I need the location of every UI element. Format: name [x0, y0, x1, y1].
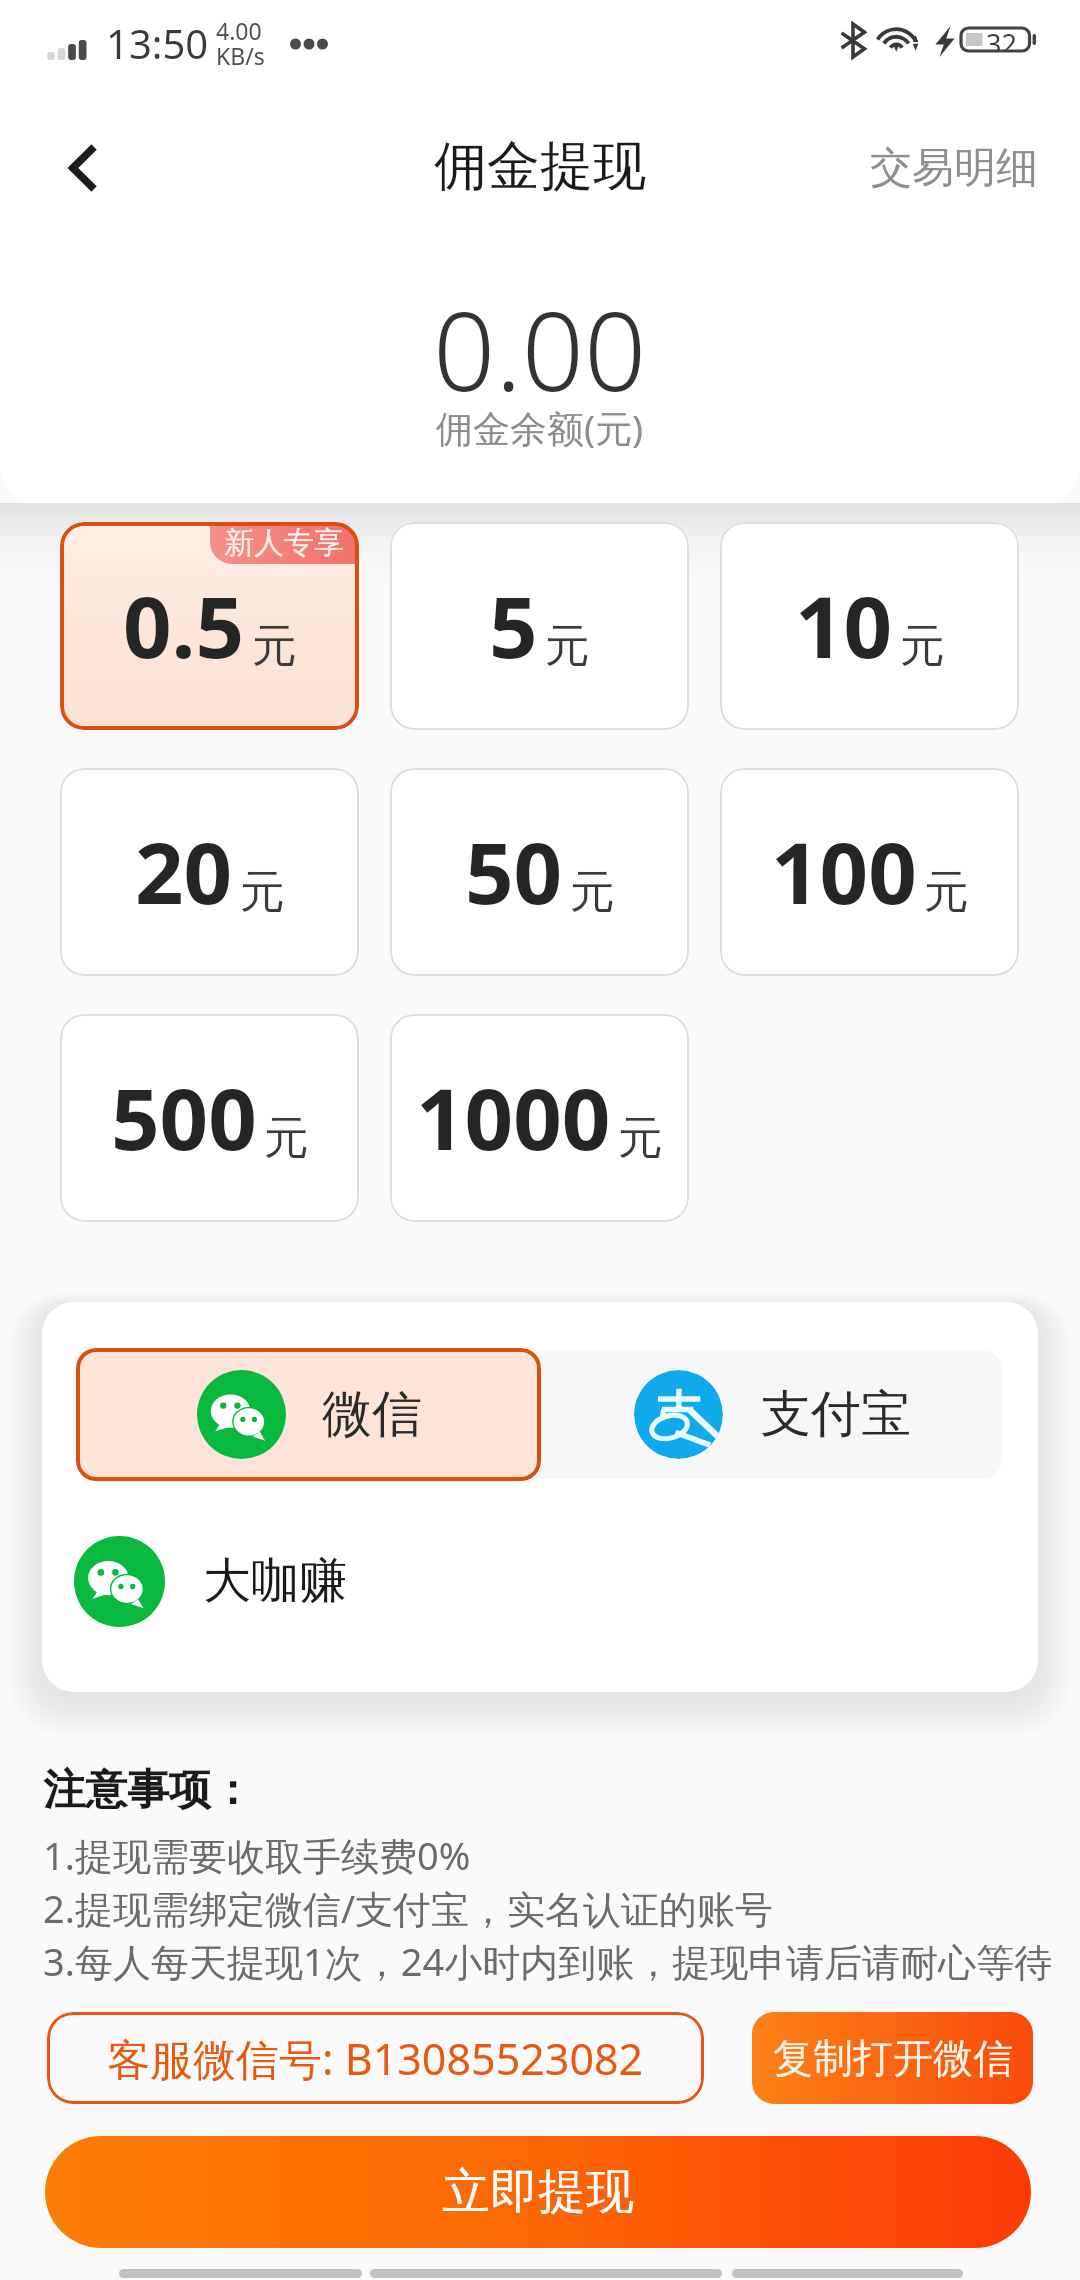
staticText: 13:50	[106, 16, 209, 70]
staticText: KB/s	[216, 40, 265, 71]
button[interactable]: 0.5	[60, 522, 359, 730]
staticText: 0.5	[123, 567, 245, 683]
staticText: 元	[240, 864, 285, 921]
button[interactable]: 100	[720, 768, 1019, 976]
staticText: 500	[111, 1059, 257, 1175]
button[interactable]: 复制打开微信	[752, 2012, 1033, 2104]
staticText: 大咖赚	[203, 1551, 347, 1611]
staticText: 元	[900, 618, 945, 675]
button[interactable]: 50	[390, 768, 689, 976]
staticText: 32	[986, 25, 1017, 52]
button[interactable]: Back	[28, 114, 140, 222]
button[interactable]: 客服微信号: B13085523082	[47, 2012, 704, 2104]
staticText: 佣金余额(元)	[436, 402, 644, 453]
staticText: 佣金提现	[434, 133, 646, 200]
staticText: 交易明细	[870, 142, 1038, 195]
staticText: 支付宝	[761, 1383, 911, 1446]
staticText: 元	[924, 864, 969, 921]
button[interactable]: 大咖赚	[74, 1531, 347, 1631]
staticText: 客服微信号: B13085523082	[107, 2029, 644, 2088]
staticText: 元	[618, 1110, 663, 1167]
staticText: 复制打开微信	[773, 2033, 1013, 2083]
staticText: 50	[465, 813, 563, 929]
staticText: 100	[771, 813, 917, 929]
staticText: 元	[570, 864, 615, 921]
staticText: 5	[489, 567, 538, 683]
staticText: 1.提现需要收取手续费0%	[43, 1829, 471, 1881]
staticText: 10	[795, 567, 893, 683]
button[interactable]: 微信	[76, 1348, 541, 1481]
staticText: 立即提现	[442, 2162, 634, 2222]
staticText: 0.00	[433, 274, 647, 422]
button[interactable]: 20	[60, 768, 359, 976]
staticText: 3.每人每天提现1次，24小时内到账，提现申请后请耐心等待	[43, 1935, 1053, 1987]
staticText: 2.提现需绑定微信/支付宝，实名认证的账号	[43, 1882, 774, 1934]
staticText: 1000	[416, 1059, 611, 1175]
staticText: 新人专享	[224, 524, 344, 562]
button[interactable]: 1000	[390, 1014, 689, 1222]
staticText: 20	[135, 813, 233, 929]
button[interactable]: 10	[720, 522, 1019, 730]
staticText: 元	[545, 618, 590, 675]
button[interactable]: 5	[390, 522, 689, 730]
button[interactable]: 交易明细	[836, 126, 1080, 211]
button[interactable]: 500	[60, 1014, 359, 1222]
button[interactable]: 立即提现	[45, 2136, 1031, 2248]
staticText: 微信	[322, 1383, 422, 1446]
staticText: 元	[264, 1110, 309, 1167]
staticText: 元	[252, 618, 297, 675]
staticText: 注意事项：	[43, 1764, 253, 1817]
staticText: 4.00	[216, 15, 262, 46]
button[interactable]: 支付宝	[540, 1350, 1002, 1479]
